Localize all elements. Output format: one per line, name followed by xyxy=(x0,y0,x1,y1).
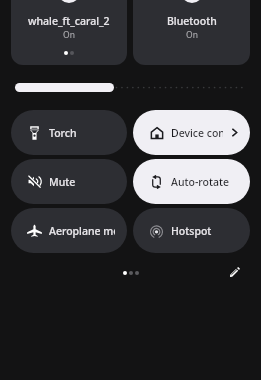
staticText: Mute xyxy=(49,175,76,189)
button[interactable]: Aeroplane mode xyxy=(11,208,127,253)
staticText: Bluetooth xyxy=(167,14,217,28)
staticText: Hotspot xyxy=(171,224,212,238)
staticText: Device controls xyxy=(171,126,223,140)
button[interactable]: Torch xyxy=(11,110,127,155)
staticText: Torch xyxy=(49,126,77,140)
staticText: Aeroplane mode xyxy=(49,224,115,238)
staticText: whale_ft_caral_2 xyxy=(28,14,110,28)
button[interactable]: Mute xyxy=(11,159,127,204)
button[interactable]: Bluetooth xyxy=(133,0,250,65)
button[interactable] xyxy=(15,83,246,92)
button[interactable]: Auto-rotate xyxy=(133,159,250,204)
button[interactable]: whale_ft_caral_2 xyxy=(11,0,127,65)
staticText: Auto-rotate xyxy=(171,175,229,189)
button[interactable]: Edit tiles xyxy=(225,262,245,282)
staticText: On xyxy=(63,29,75,41)
button[interactable]: Device controls xyxy=(133,110,250,155)
button[interactable]: Hotspot xyxy=(133,208,250,253)
staticText: On xyxy=(186,29,198,41)
